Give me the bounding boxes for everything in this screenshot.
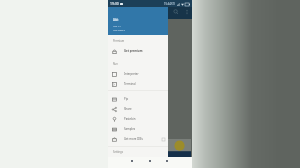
button[interactable]: Search [172,8,180,16]
staticText: Pastebin [124,117,136,121]
button[interactable]: Pip [108,94,168,104]
button[interactable]: Interpreter [108,69,168,79]
button[interactable]: Recents [163,157,171,165]
staticText: Settings [113,150,123,154]
staticText: Line offset 0 [113,29,126,32]
button[interactable]: Home [146,157,154,165]
button[interactable]: More options [183,8,191,16]
button[interactable]: Terminal [108,79,168,89]
button[interactable]: Samples [108,124,168,134]
staticText: Share [124,107,132,111]
button[interactable]: Back [128,157,136,165]
button[interactable]: Get premium [108,46,168,56]
staticText: Samples [124,127,136,131]
staticText: Terminal [124,82,136,86]
staticText: Get premium [124,49,143,53]
button[interactable]: Share [108,104,168,114]
staticText: Line 1:1 [113,25,121,28]
staticText: Get more IDEs [124,137,143,141]
button[interactable]: Pastebin [108,114,168,124]
staticText: Interpreter [124,72,139,76]
staticText: 19:30 [110,1,119,6]
button[interactable]: Get more IDEs [108,134,168,144]
staticText: Pip [124,97,129,101]
staticText: Abit [113,18,119,22]
staticText: Premium [113,39,125,43]
staticText: 15:44/(1) [164,2,176,6]
staticText: Run [113,62,118,66]
